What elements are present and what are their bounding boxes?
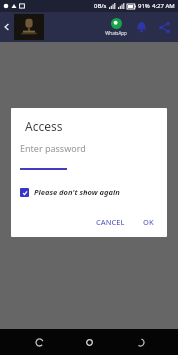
- button[interactable]: Album art: [14, 14, 44, 40]
- staticText: 91%: [138, 2, 150, 10]
- staticText: Enter password: [20, 142, 86, 154]
- staticText: Access: [25, 118, 63, 134]
- button[interactable]: Home: [77, 330, 101, 354]
- button[interactable]: Notifications: [130, 12, 152, 42]
- button[interactable]: OK: [138, 214, 159, 230]
- button[interactable]: WhatsApp: [102, 12, 130, 42]
- staticText: WhatsApp: [105, 30, 127, 36]
- staticText: Please don't show again: [34, 187, 120, 197]
- staticText: OK: [143, 217, 154, 227]
- button[interactable]: Back: [0, 20, 14, 34]
- button[interactable]: Recent apps: [128, 330, 152, 354]
- staticText: CANCEL: [96, 217, 125, 227]
- button[interactable]: Please don't show again: [20, 187, 120, 197]
- button[interactable]: Back: [27, 330, 51, 354]
- staticText: 4:27 AM: [152, 2, 175, 10]
- button[interactable]: Share: [152, 12, 176, 42]
- staticText: 0B/s: [94, 2, 107, 10]
- button[interactable]: CANCEL: [91, 214, 130, 230]
